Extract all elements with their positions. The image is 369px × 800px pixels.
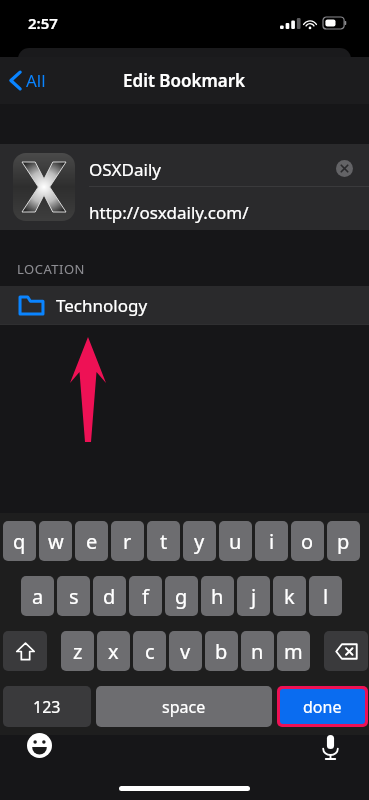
button[interactable]: y xyxy=(183,521,216,561)
staticText: i xyxy=(269,528,275,555)
button[interactable]: done xyxy=(280,689,365,724)
button[interactable]: o xyxy=(291,521,324,561)
staticText: a xyxy=(32,583,44,610)
button[interactable]: Shift xyxy=(3,631,47,671)
button[interactable]: 123 xyxy=(3,686,91,727)
staticText: w xyxy=(48,528,64,555)
button[interactable]: k xyxy=(273,576,306,616)
staticText: y xyxy=(194,528,205,555)
staticText: g xyxy=(175,583,188,610)
staticText: h xyxy=(211,583,224,610)
button[interactable]: f xyxy=(129,576,162,616)
button[interactable]: e xyxy=(75,521,108,561)
button[interactable]: w xyxy=(39,521,72,561)
button[interactable]: Clear text xyxy=(333,157,355,179)
staticText: v xyxy=(180,638,191,665)
staticText: x xyxy=(108,638,119,665)
staticText: l xyxy=(323,583,329,610)
staticText: c xyxy=(145,638,155,665)
staticText: d xyxy=(103,583,116,610)
button[interactable]: a xyxy=(21,576,54,616)
button[interactable]: s xyxy=(57,576,90,616)
button[interactable]: x xyxy=(97,631,130,671)
button[interactable]: m xyxy=(277,631,310,671)
button[interactable]: d xyxy=(93,576,126,616)
staticText: p xyxy=(337,528,350,555)
button[interactable]: q xyxy=(3,521,36,561)
staticText: m xyxy=(284,638,303,665)
button[interactable]: All xyxy=(0,63,56,98)
staticText: b xyxy=(215,638,228,665)
button[interactable]: space xyxy=(96,686,272,727)
staticText: n xyxy=(251,638,264,665)
button[interactable]: p xyxy=(327,521,360,561)
button[interactable]: t xyxy=(147,521,180,561)
staticText: space xyxy=(162,696,206,718)
button[interactable]: Technology xyxy=(0,286,369,324)
button[interactable]: c xyxy=(133,631,166,671)
staticText: Edit Bookmark xyxy=(123,69,246,92)
button[interactable]: r xyxy=(111,521,144,561)
staticText: q xyxy=(13,528,26,555)
staticText: e xyxy=(86,528,98,555)
staticText: z xyxy=(73,638,83,665)
staticText: t xyxy=(160,528,168,555)
staticText: done xyxy=(303,696,342,718)
staticText: OSXDaily xyxy=(89,158,161,181)
staticText: u xyxy=(229,528,242,555)
staticText: s xyxy=(69,583,79,610)
button[interactable]: n xyxy=(241,631,274,671)
staticText: http://osxdaily.com/ xyxy=(89,201,249,224)
button[interactable]: b xyxy=(205,631,238,671)
button[interactable]: Emoji xyxy=(26,732,52,758)
button[interactable]: Dictation xyxy=(317,734,343,760)
button[interactable]: j xyxy=(237,576,270,616)
staticText: f xyxy=(142,583,149,610)
staticText: LOCATION xyxy=(17,260,85,278)
button[interactable]: i xyxy=(255,521,288,561)
button[interactable]: u xyxy=(219,521,252,561)
button[interactable]: z xyxy=(61,631,94,671)
button[interactable]: g xyxy=(165,576,198,616)
button[interactable]: Backspace xyxy=(324,631,368,671)
staticText: k xyxy=(284,583,295,610)
staticText: j xyxy=(251,583,257,610)
staticText: 2:57 xyxy=(28,13,58,33)
staticText: r xyxy=(123,528,132,555)
staticText: 123 xyxy=(33,696,61,718)
button[interactable]: v xyxy=(169,631,202,671)
staticText: All xyxy=(26,69,46,92)
staticText: Technology xyxy=(56,294,148,317)
button[interactable]: l xyxy=(309,576,342,616)
staticText: o xyxy=(301,528,314,555)
button[interactable]: h xyxy=(201,576,234,616)
